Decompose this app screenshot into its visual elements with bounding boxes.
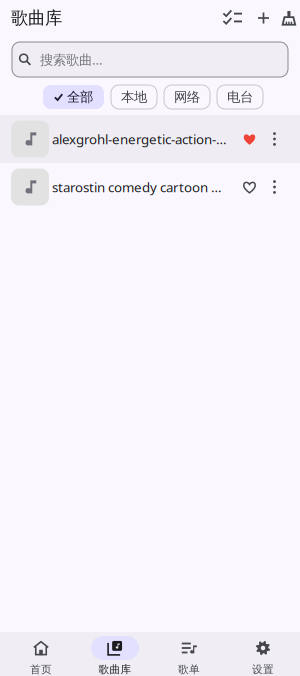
staticText: 歌曲库	[98, 663, 131, 676]
button[interactable]: 网络	[164, 85, 210, 109]
staticText: 全部	[67, 89, 93, 105]
staticText: 电台	[227, 89, 253, 105]
button[interactable]: 本地	[111, 85, 157, 109]
staticText: 首页	[30, 663, 52, 676]
staticText: 本地	[121, 89, 147, 105]
button[interactable]: 设置	[226, 632, 300, 676]
button[interactable]: 歌曲库	[78, 632, 152, 676]
staticText: 歌单	[178, 663, 200, 676]
button[interactable]: 搜索歌曲…	[12, 42, 288, 77]
staticText: 设置	[252, 663, 274, 676]
button[interactable]: 首页	[4, 632, 78, 676]
staticText: alexgrohl-energetic-action-trailer	[52, 130, 229, 148]
button[interactable]: alexgrohl-energetic-action-trailer	[0, 115, 300, 163]
staticText: 搜索歌曲…	[40, 51, 103, 68]
button[interactable]: 多选	[216, 4, 249, 32]
button[interactable]: 歌单	[152, 632, 226, 676]
button[interactable]: 添加歌曲	[249, 4, 278, 32]
button[interactable]: 全部	[43, 85, 104, 109]
staticText: starostin comedy cartoon bright	[52, 178, 229, 196]
staticText: 网络	[174, 89, 200, 105]
staticText: 歌曲库	[11, 7, 62, 29]
button[interactable]: starostin comedy cartoon bright	[0, 163, 300, 211]
button[interactable]: 清理	[278, 4, 299, 32]
button[interactable]: 电台	[217, 85, 263, 109]
